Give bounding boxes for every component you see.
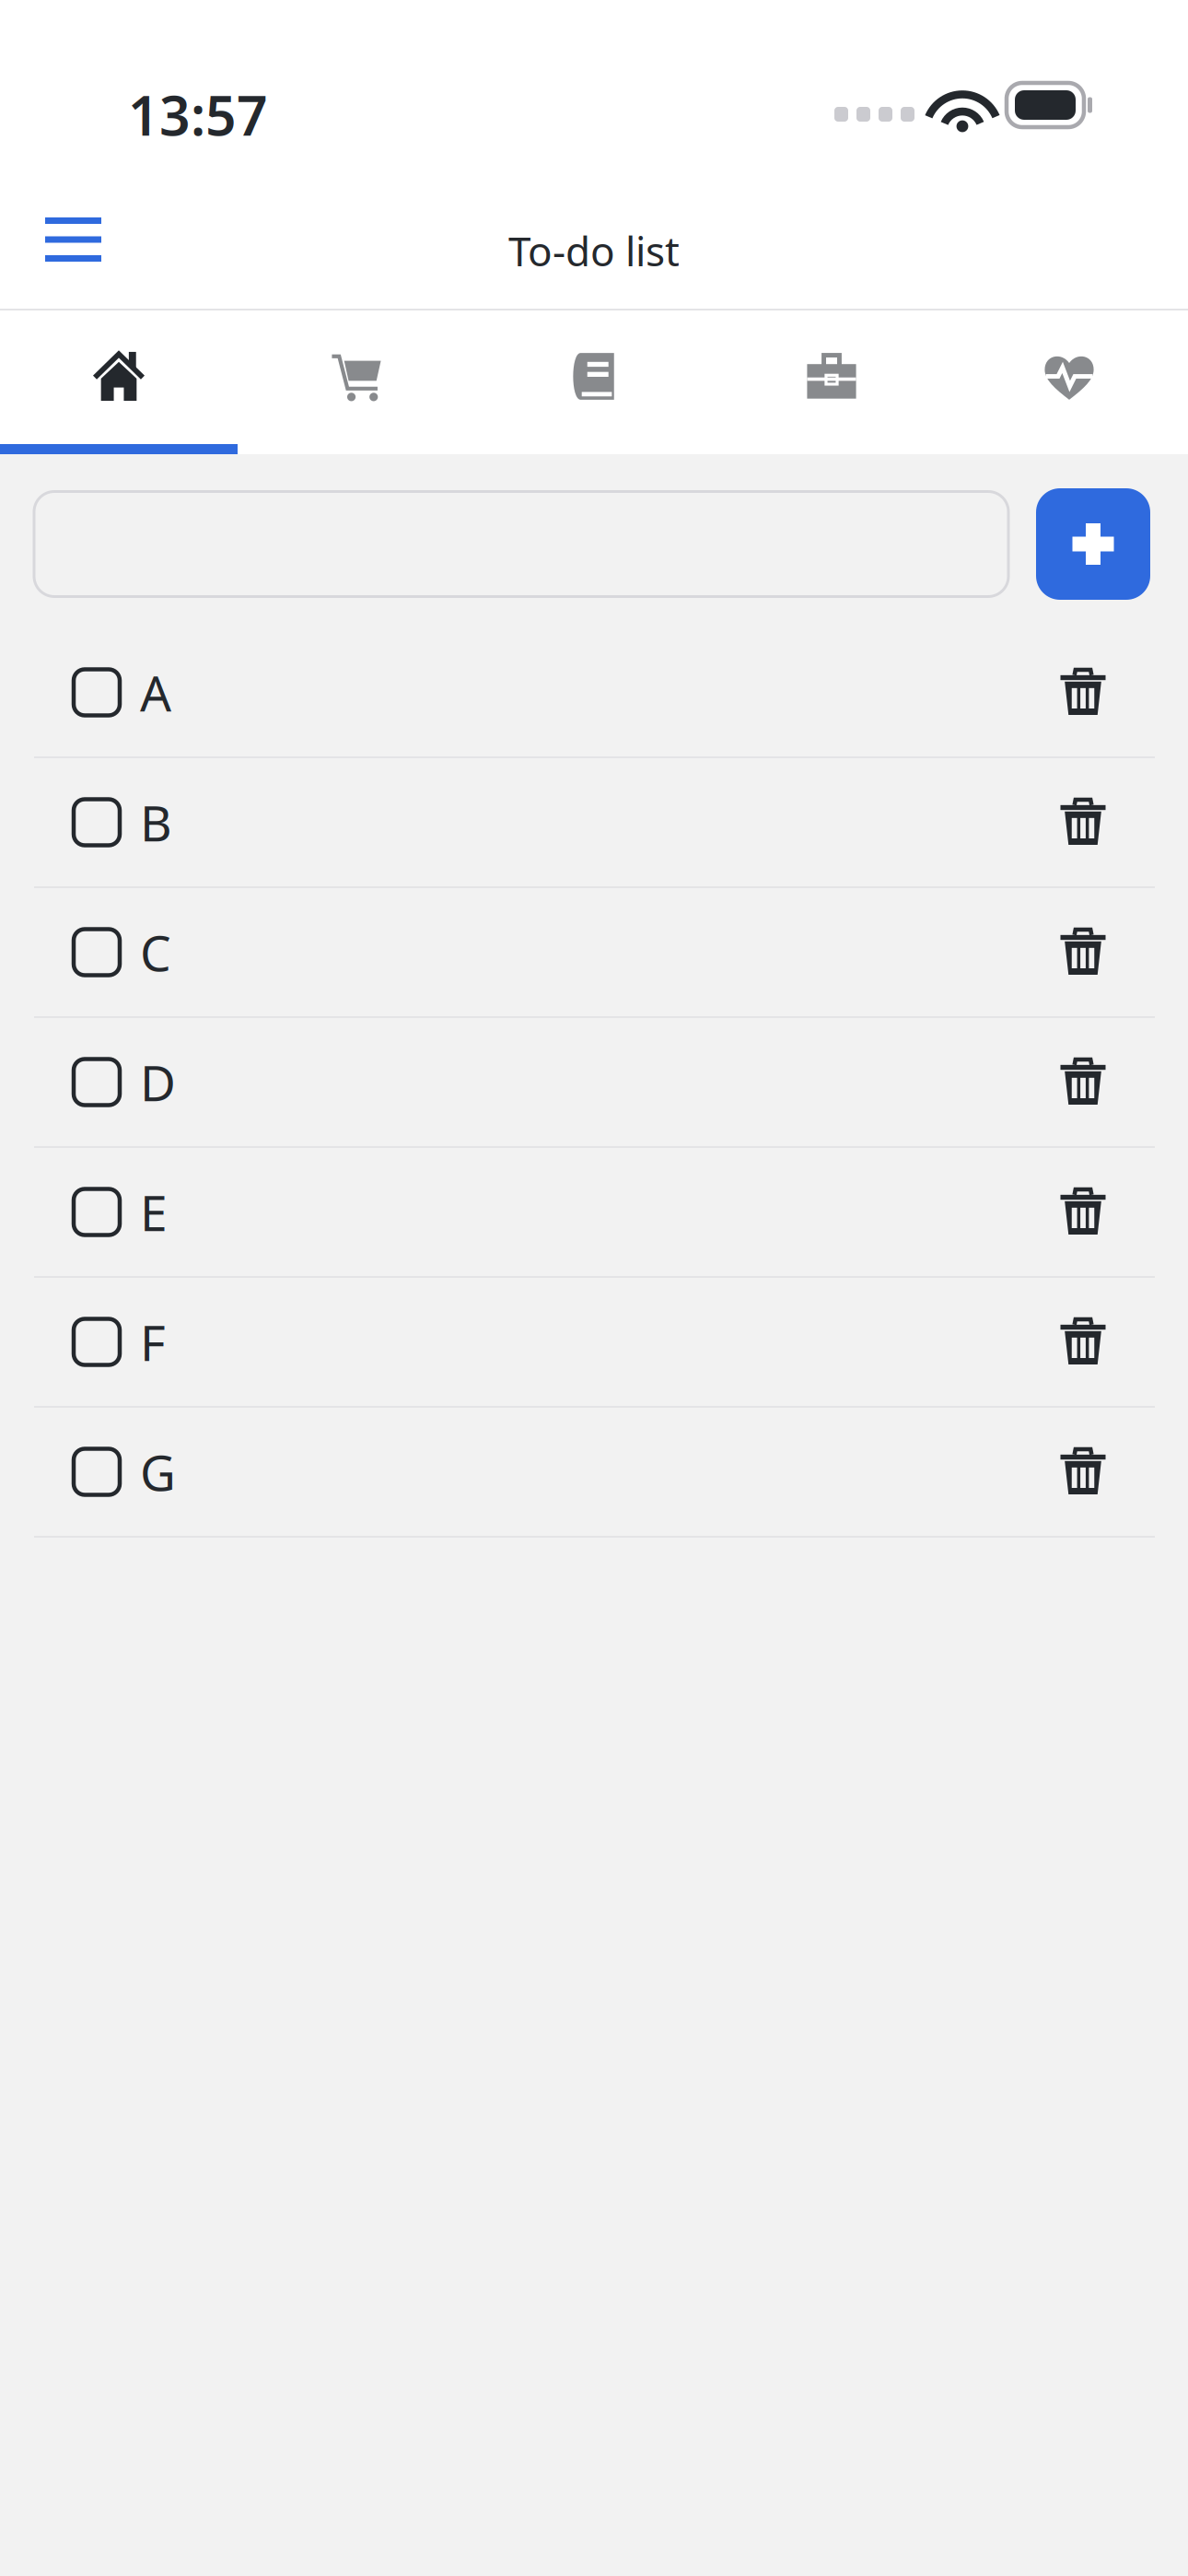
button[interactable]: Delete D [1057, 1056, 1109, 1108]
button[interactable]: Menu [16, 193, 131, 309]
staticText: E [140, 1179, 168, 1245]
button[interactable]: Toggle A [74, 669, 120, 715]
staticText: C [140, 920, 171, 985]
button[interactable]: A [0, 628, 1188, 756]
staticText [34, 517, 44, 571]
staticText: A [140, 660, 171, 725]
button[interactable]: D [0, 1018, 1188, 1146]
button[interactable]: Delete C [1057, 926, 1109, 978]
button[interactable]: Delete B [1057, 796, 1109, 848]
button[interactable]: Toggle B [74, 799, 120, 845]
button[interactable]: New to-do item [34, 492, 1008, 597]
button[interactable]: Delete G [1057, 1446, 1109, 1498]
button[interactable]: Toggle C [74, 929, 120, 975]
staticText: D [140, 1049, 176, 1115]
button[interactable]: Health [950, 310, 1188, 454]
staticText: To-do list [508, 224, 680, 278]
button[interactable]: Toggle D [74, 1059, 120, 1105]
button[interactable]: C [0, 888, 1188, 1016]
button[interactable]: Toggle G [74, 1449, 120, 1495]
button[interactable]: F [0, 1278, 1188, 1406]
button[interactable]: Toggle E [74, 1189, 120, 1235]
button[interactable]: B [0, 758, 1188, 886]
button[interactable]: E [0, 1148, 1188, 1276]
button[interactable]: Home [0, 310, 238, 454]
button[interactable]: Shopping [238, 310, 475, 454]
button[interactable]: Study [475, 310, 713, 454]
button[interactable]: Delete A [1057, 667, 1109, 718]
staticText: F [140, 1309, 166, 1375]
button[interactable]: Add item [1036, 488, 1150, 600]
button[interactable]: Toggle F [74, 1319, 120, 1365]
button[interactable]: Delete E [1057, 1186, 1109, 1238]
button[interactable]: G [0, 1408, 1188, 1536]
staticText: 13:57 [128, 79, 268, 151]
button[interactable]: Delete F [1057, 1316, 1109, 1368]
staticText: B [140, 790, 172, 855]
staticText: G [140, 1439, 176, 1504]
button[interactable]: Work [713, 310, 950, 454]
